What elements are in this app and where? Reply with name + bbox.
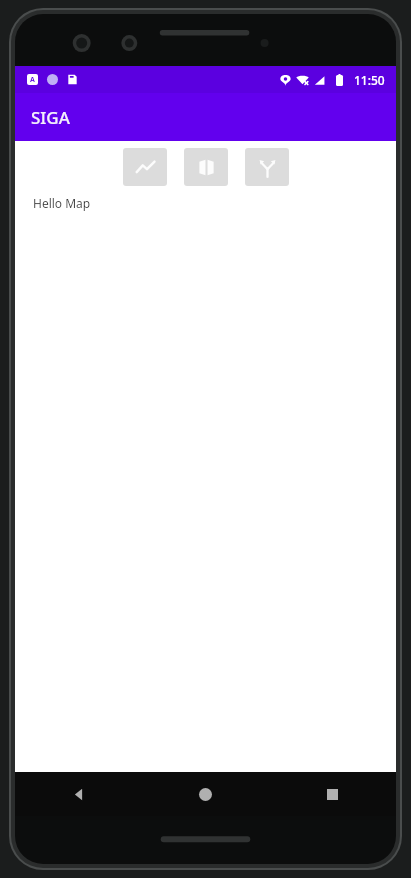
staticText: Hello Map bbox=[33, 195, 91, 211]
staticText: A bbox=[30, 75, 35, 85]
button[interactable]: Home bbox=[142, 772, 269, 816]
button[interactable]: Map bbox=[184, 148, 228, 186]
button[interactable]: Chart bbox=[123, 148, 167, 186]
button[interactable]: Route bbox=[245, 148, 289, 186]
staticText: SIGA bbox=[31, 106, 70, 129]
button[interactable]: Back bbox=[15, 772, 142, 816]
staticText: 11:50 bbox=[354, 72, 385, 88]
button[interactable]: Recent apps bbox=[269, 772, 396, 816]
